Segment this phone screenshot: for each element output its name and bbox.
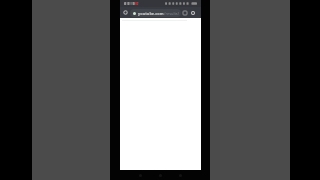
button[interactable]: Back — [136, 171, 144, 179]
button[interactable]: Recents — [176, 171, 184, 179]
button[interactable]: Home — [121, 8, 130, 17]
button[interactable]: Account — [189, 9, 197, 17]
staticText: youtube.com — [138, 11, 164, 16]
staticText: /results?search — [164, 11, 179, 16]
button[interactable]: Home — [156, 171, 164, 179]
button[interactable]: youtube.com — [130, 9, 181, 17]
button[interactable]: Bookmarks — [181, 9, 189, 17]
